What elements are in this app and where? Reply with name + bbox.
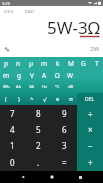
staticText: √ [43,96,47,103]
staticText: = [62,157,67,168]
staticText: T [95,59,99,68]
staticText: m [3,71,10,80]
staticText: W [67,71,74,80]
button[interactable]: µ [25,57,38,69]
button[interactable]: 0 [0,154,25,171]
button[interactable]: p [0,57,12,69]
button[interactable]: °C [51,81,64,93]
staticText: 2W [90,45,100,53]
button[interactable]: RAD [23,8,37,16]
button[interactable]: Ah [12,81,25,93]
button[interactable]: Back [17,171,29,183]
button[interactable]: n [12,57,25,69]
staticText: dB [68,84,74,90]
button[interactable]: ÷ [77,105,103,121]
button[interactable]: Recents [74,171,86,183]
button[interactable]: e [51,93,64,105]
button[interactable]: W [64,69,77,81]
button[interactable]: k [51,57,64,69]
button[interactable]: History [4,46,10,52]
button[interactable]: 4 [0,121,25,137]
button[interactable]: A [38,69,51,81]
staticText: V [30,71,34,80]
staticText: Hz [42,84,48,90]
staticText: ( [5,95,7,103]
button[interactable]: √ [38,93,51,105]
button[interactable]: DEL [77,93,103,105]
button[interactable]: Wh [0,81,12,93]
staticText: 0 [10,157,15,168]
button[interactable]: dB [64,81,77,93]
button[interactable]: + [77,154,103,171]
button[interactable]: 7 [0,105,25,121]
staticText: ^ [30,95,34,103]
button[interactable]: 2 [25,137,51,154]
staticText: 3:30 [2,1,10,6]
staticText: n [16,59,21,68]
staticText: p [4,59,8,68]
staticText: ÷ [88,108,93,119]
staticText: g [17,71,21,80]
button[interactable]: Ω [51,69,64,81]
staticText: M [68,59,74,68]
button[interactable]: 8 [25,105,51,121]
staticText: 7 [10,108,15,119]
staticText: + [88,157,93,168]
staticText: k [56,59,60,68]
staticText: °C [55,84,60,90]
staticText: π [69,95,73,103]
staticText: × [88,124,93,135]
button[interactable]: . [25,154,51,171]
staticText: 1 [10,140,15,151]
button[interactable]: Home [46,171,58,183]
staticText: 5 [36,124,41,135]
staticText: Ah [16,84,22,90]
button[interactable]: ) [12,93,25,105]
button[interactable]: 3 [51,137,77,154]
button[interactable]: × [77,121,103,137]
staticText: 9 [62,108,67,119]
staticText: m [41,59,48,68]
button[interactable]: 1 [0,137,25,154]
button[interactable]: 9 [51,105,77,121]
staticText: 8 [36,108,41,119]
button[interactable]: 5 [25,121,51,137]
staticText: . [37,157,40,168]
staticText: 2 [36,140,41,151]
staticText: DEG [4,9,14,15]
button[interactable]: = [51,154,77,171]
button[interactable]: g [12,69,25,81]
button[interactable]: T [90,57,103,69]
button[interactable]: − [77,137,103,154]
button[interactable]: Hz [38,81,51,93]
staticText: 5W-3Ω [47,16,100,39]
button[interactable]: VA [25,81,38,93]
staticText: A [42,71,47,80]
button[interactable]: DEG [2,8,16,16]
staticText: ) [18,95,20,103]
button[interactable]: m [38,57,51,69]
staticText: 6 [62,124,67,135]
button[interactable]: π [64,93,77,105]
button[interactable]: m [0,69,12,81]
staticText: VA [29,84,35,90]
button[interactable]: ( [0,93,12,105]
staticText: RAD [25,9,35,15]
button[interactable]: V [25,69,38,81]
button[interactable]: M [64,57,77,69]
button[interactable]: 6 [51,121,77,137]
staticText: G [81,59,86,68]
staticText: − [88,140,93,151]
staticText: Wh [3,84,10,90]
staticText: e [56,95,60,103]
staticText: Ω [55,71,60,80]
staticText: 3 [62,140,67,151]
staticText: DEL [85,96,95,103]
staticText: µ [29,59,34,68]
staticText: 4 [10,124,15,135]
button[interactable]: ^ [25,93,38,105]
button[interactable]: G [77,57,90,69]
